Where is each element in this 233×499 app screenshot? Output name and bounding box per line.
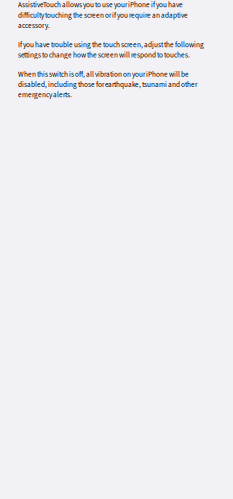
staticText: If you have trouble using the touch scre… bbox=[18, 40, 204, 60]
staticText: When this switch is off, all vibration o… bbox=[18, 69, 197, 100]
staticText: AssistiveTouch allows you to use your iP… bbox=[18, 0, 188, 31]
